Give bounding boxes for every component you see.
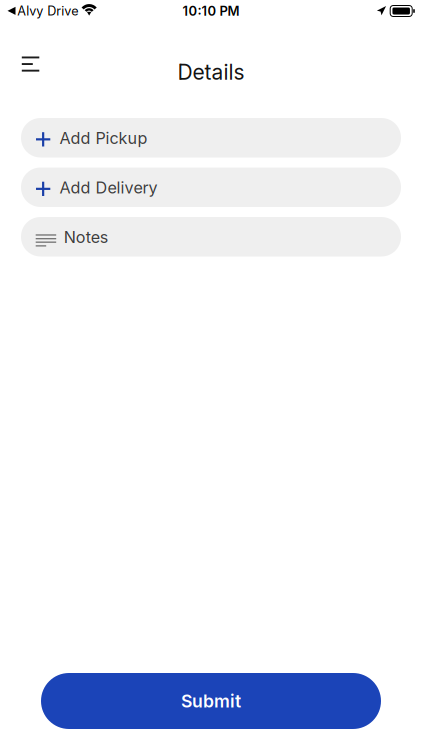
button[interactable]: Submit <box>41 673 381 729</box>
staticText: Submit <box>181 690 241 712</box>
button[interactable]: Add Delivery <box>21 167 401 207</box>
button[interactable]: Add Pickup <box>21 118 401 157</box>
staticText: Alvy Drive <box>17 3 78 19</box>
staticText: 10:10 PM <box>182 3 239 19</box>
staticText: Details <box>177 59 244 85</box>
button[interactable]: Menu <box>0 50 53 94</box>
staticText: Add Delivery <box>59 178 157 197</box>
staticText: Notes <box>64 227 109 247</box>
staticText: Add Pickup <box>59 128 147 148</box>
button[interactable]: Notes <box>21 217 401 256</box>
